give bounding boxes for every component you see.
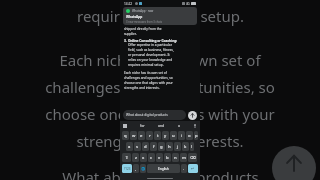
button[interactable]: What about digital products (123, 110, 186, 120)
staticText: ⌫ (190, 155, 196, 160)
staticText: t (157, 133, 159, 139)
button[interactable]: r (146, 131, 153, 140)
staticText: requires minimal setup. (77, 6, 244, 26)
staticText: . (183, 166, 185, 172)
button[interactable]: WhatsApp · now (123, 7, 197, 25)
staticText: Each niche has its own set of challenges… (124, 71, 173, 90)
staticText: b (166, 155, 169, 161)
button[interactable]: l (190, 142, 194, 151)
staticText: ↵ (191, 166, 195, 171)
staticText: y (164, 133, 167, 139)
staticText: m (182, 155, 186, 161)
staticText: challenges and opportunities, so (45, 77, 275, 97)
button[interactable]: u (170, 131, 177, 140)
button[interactable]: b (164, 153, 171, 162)
staticText: g (160, 144, 163, 150)
button[interactable]: Send (188, 111, 197, 120)
staticText: j (177, 144, 179, 150)
staticText: WhatsApp · now (132, 9, 154, 13)
button[interactable]: a (126, 142, 133, 151)
staticText: and (158, 123, 165, 128)
staticText: Offer expertise in a particular field, s… (128, 43, 174, 67)
staticText: for (140, 123, 145, 128)
staticText: 3 new messages from 3 chats (126, 20, 162, 23)
staticText: WhatsApp (126, 15, 143, 19)
staticText: o (188, 133, 191, 139)
staticText: w (132, 133, 136, 139)
staticText: What about digital products (62, 167, 259, 180)
button[interactable]: d (142, 142, 149, 151)
button[interactable]: e (138, 131, 145, 140)
button[interactable]: n (172, 153, 179, 162)
button[interactable]: j (174, 142, 181, 151)
button[interactable]: c (148, 153, 155, 162)
button[interactable]: m (180, 153, 187, 162)
staticText: q (124, 133, 127, 139)
staticText: a (178, 123, 180, 128)
button[interactable]: s (134, 142, 141, 151)
staticText: English (158, 167, 169, 171)
button[interactable]: v (156, 153, 163, 162)
button[interactable]: . (181, 164, 187, 173)
staticText: Each niche has its own set of (59, 50, 261, 70)
staticText: s (136, 144, 139, 150)
button[interactable]: q (122, 131, 129, 140)
button[interactable]: t (154, 131, 161, 140)
button[interactable]: Scroll to top (272, 146, 316, 180)
button[interactable]: k (182, 142, 189, 151)
staticText: , (135, 166, 137, 172)
staticText: x (142, 155, 145, 161)
button[interactable]: p (194, 131, 198, 140)
staticText: u (172, 133, 175, 139)
staticText: ?123 (124, 167, 131, 171)
button[interactable]: ?123 (122, 164, 132, 173)
staticText: 3. (124, 39, 128, 43)
staticText: strengths and interests. (76, 131, 244, 151)
staticText: e (140, 133, 143, 139)
staticText: f (153, 144, 155, 150)
button[interactable]: w (130, 131, 137, 140)
button[interactable]: h (166, 142, 173, 151)
button[interactable]: ⇧ (122, 153, 131, 162)
staticText: c (150, 155, 153, 161)
staticText: i (181, 133, 183, 139)
button[interactable]: z (132, 153, 139, 162)
button[interactable]: 🌐 (140, 164, 146, 173)
button[interactable]: f (150, 142, 157, 151)
staticText: shipped directly from the supplier. (124, 27, 162, 36)
staticText: choose one that aligns with your (45, 104, 275, 124)
button[interactable]: ↵ (188, 164, 198, 173)
button[interactable]: i (178, 131, 185, 140)
staticText: h (168, 144, 171, 150)
staticText: Online Consulting or Coaching: (128, 39, 178, 43)
button[interactable]: o (186, 131, 193, 140)
staticText: a (128, 144, 131, 150)
staticText: n (174, 155, 177, 161)
button[interactable]: English (147, 164, 180, 173)
staticText: p (195, 133, 198, 139)
button[interactable]: x (140, 153, 147, 162)
staticText: r (149, 133, 151, 139)
staticText: ⇧ (125, 155, 129, 160)
staticText: 🌐 (141, 167, 146, 171)
staticText: What about digital products (126, 113, 168, 117)
button[interactable]: ⌫ (188, 153, 197, 162)
button[interactable]: Voice input (193, 124, 197, 128)
staticText: v (158, 155, 161, 161)
staticText: d (144, 144, 147, 150)
staticText: k (184, 144, 187, 150)
staticText: z (135, 155, 137, 161)
staticText: l (191, 144, 193, 150)
button[interactable]: y (162, 131, 169, 140)
staticText: 14:22 (124, 2, 133, 6)
staticText: 4G (186, 2, 190, 6)
button[interactable]: g (158, 142, 165, 151)
button[interactable]: , (133, 164, 139, 173)
